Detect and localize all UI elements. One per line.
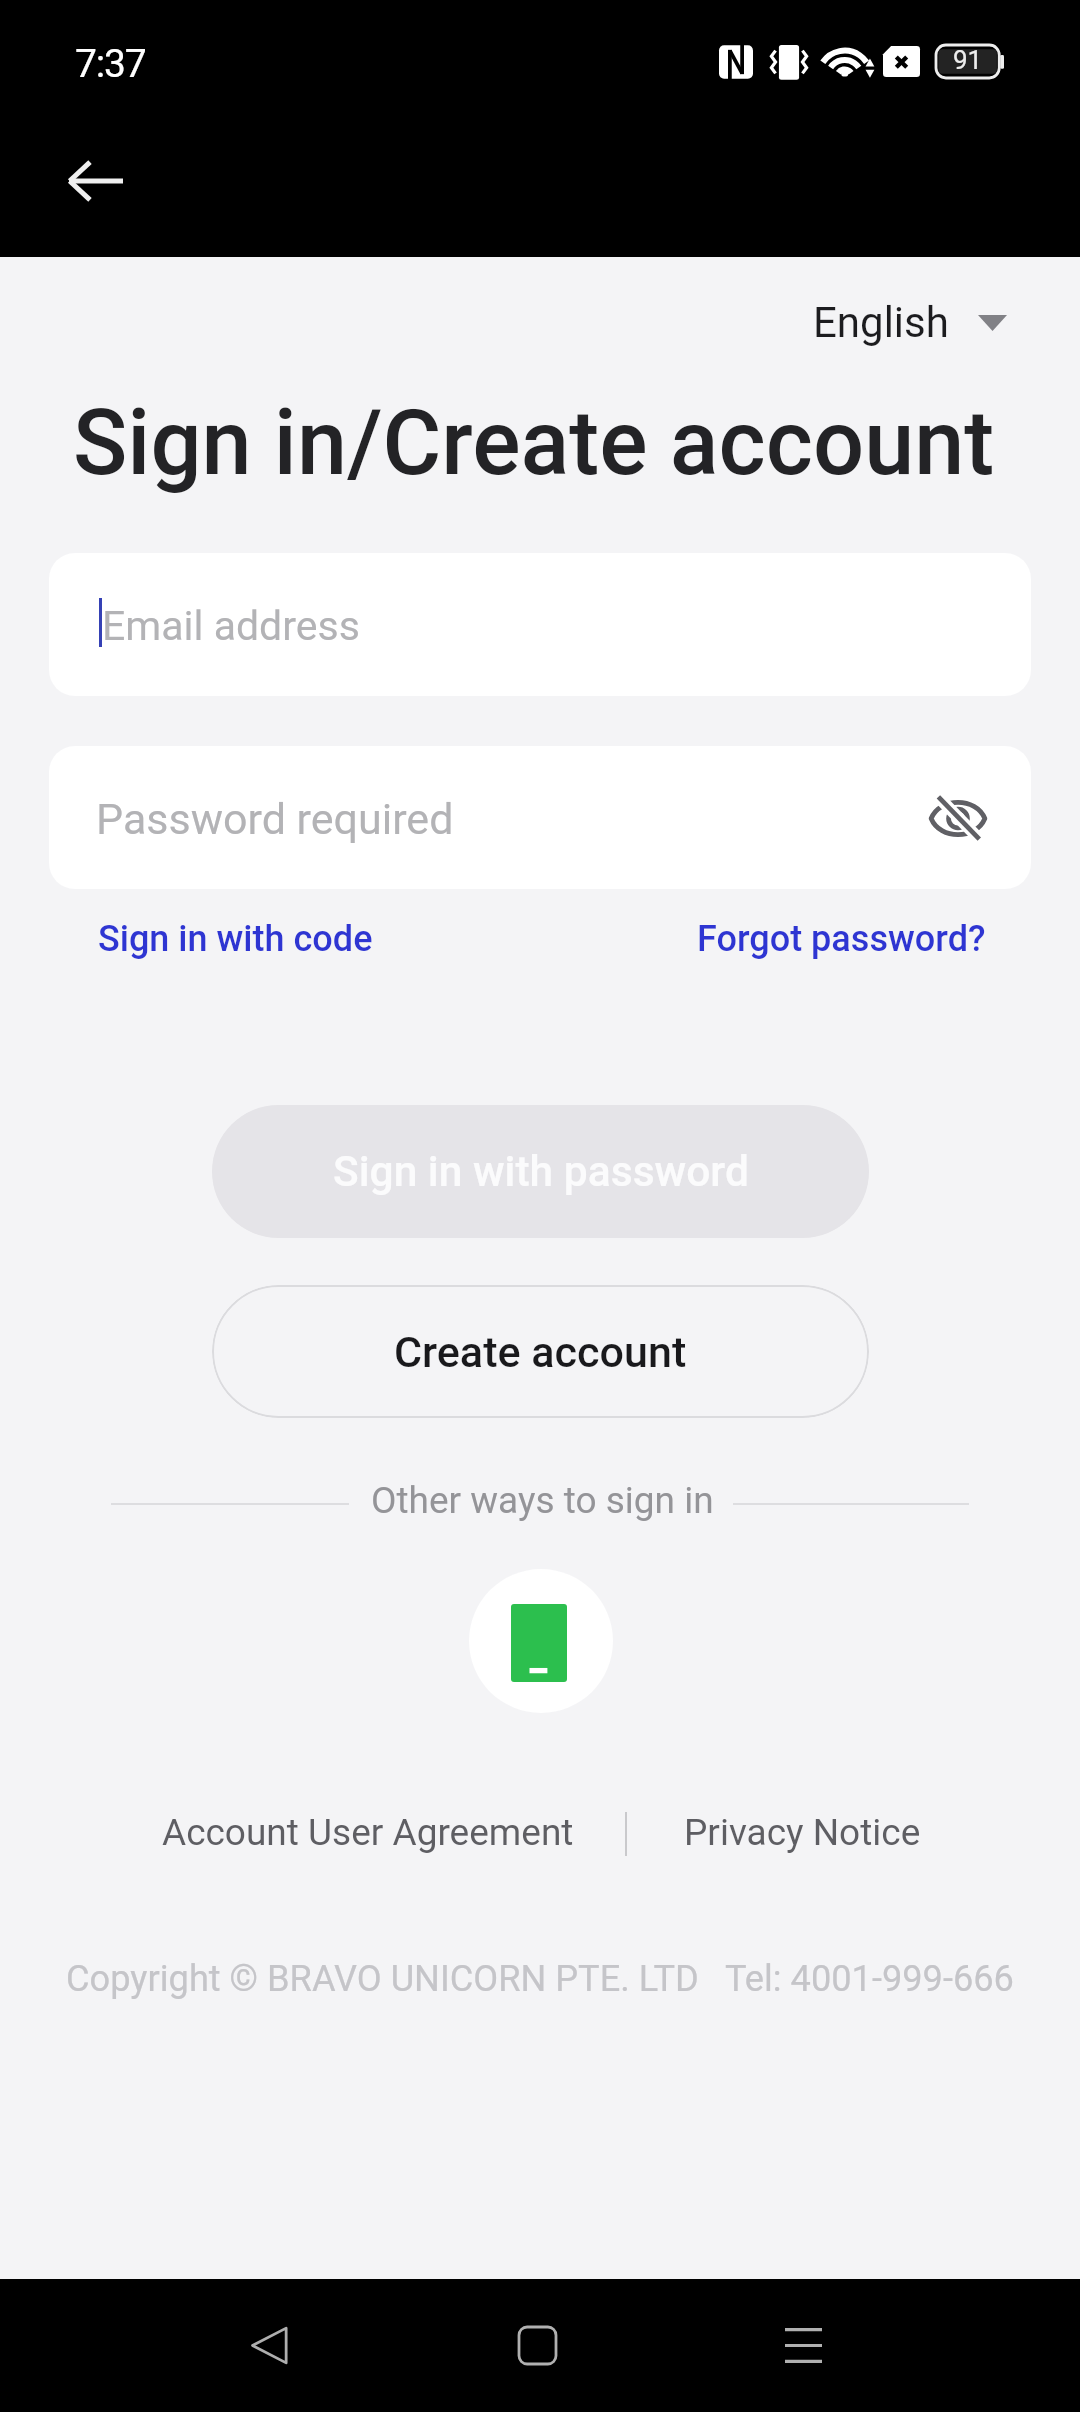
staticText: Password required [96, 794, 454, 844]
staticText: Sign in with code [98, 918, 373, 960]
staticText: Email address [102, 602, 360, 650]
button[interactable]: English [813, 298, 1007, 347]
button[interactable]: Recent apps [743, 2286, 863, 2404]
button[interactable]: Privacy Notice [664, 1791, 941, 1874]
button[interactable]: Password required [49, 746, 1031, 889]
staticText: 7:37 [75, 41, 146, 87]
button[interactable]: Back [41, 127, 149, 235]
button[interactable]: Sign in with code [82, 902, 389, 976]
staticText: Copyright © BRAVO UNICORN PTE. LTD Tel: … [0, 1957, 1080, 1999]
staticText: 91 [936, 45, 999, 75]
staticText: Sign in/Create account [73, 391, 995, 496]
button[interactable]: Show password [911, 771, 1005, 865]
button[interactable]: Forgot password? [681, 902, 1002, 976]
staticText: English [813, 298, 949, 347]
staticText: Other ways to sign in [371, 1479, 714, 1522]
button[interactable]: Sign in with password [212, 1105, 869, 1238]
button[interactable]: Sign in with app [469, 1569, 613, 1713]
button[interactable]: Create account [212, 1285, 869, 1418]
staticText: Privacy Notice [684, 1811, 921, 1854]
staticText: Account User Agreement [162, 1811, 574, 1854]
button[interactable]: Account User Agreement [142, 1791, 594, 1874]
staticText: Forgot password? [697, 918, 986, 960]
staticText: Create account [394, 1327, 687, 1377]
button[interactable]: Back [209, 2286, 329, 2404]
button[interactable]: Email address [49, 553, 1031, 696]
staticText: Sign in with password [333, 1147, 749, 1197]
button[interactable]: Home [477, 2286, 597, 2404]
